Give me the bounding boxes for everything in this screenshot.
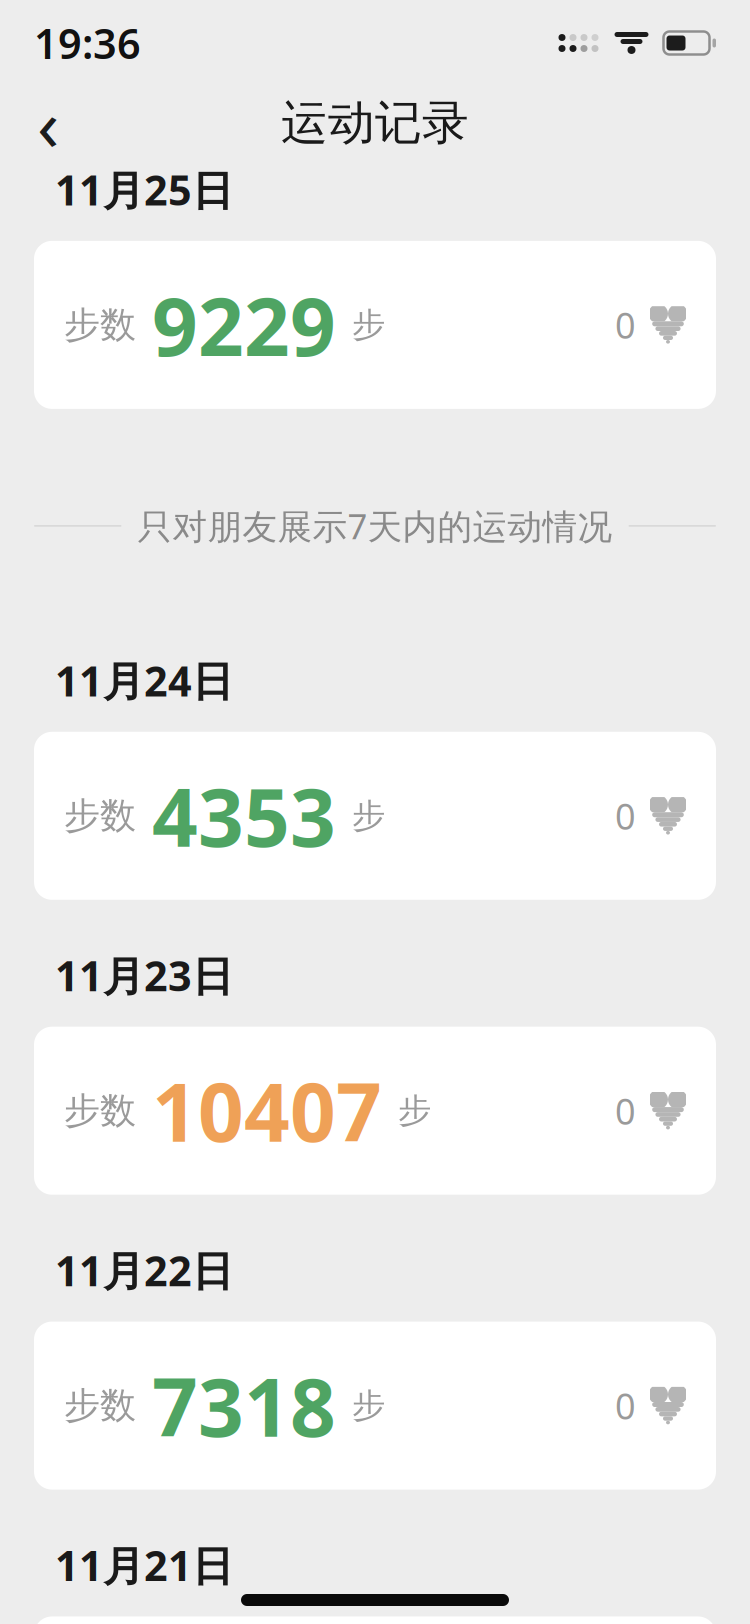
staticText: 19:36	[34, 16, 141, 70]
button[interactable]: 步数	[34, 1616, 716, 1624]
staticText: 步	[352, 795, 385, 836]
staticText: 步	[398, 1090, 431, 1131]
button[interactable]: Back	[20, 95, 76, 151]
staticText: 11月22日	[55, 1243, 233, 1298]
button[interactable]: 步数	[34, 1322, 716, 1490]
staticText: 0	[615, 1382, 636, 1429]
staticText: 步数	[64, 794, 136, 838]
staticText: 7318	[152, 1352, 336, 1459]
button[interactable]: 步数	[34, 1027, 716, 1195]
staticText: ‹	[37, 75, 59, 171]
staticText: 步数	[64, 303, 136, 347]
staticText: 0	[615, 792, 636, 840]
staticText: 步	[352, 1385, 385, 1426]
staticText: 11月21日	[55, 1538, 233, 1592]
staticText: 4353	[152, 763, 336, 869]
staticText: 步数	[64, 1089, 136, 1133]
staticText: 11月25日	[55, 162, 233, 217]
staticText: 11月24日	[55, 653, 233, 708]
staticText: 11月23日	[55, 948, 233, 1003]
staticText: 只对朋友展示7天内的运动情况	[137, 503, 612, 549]
staticText: 0	[615, 1087, 636, 1135]
staticText: 10407	[152, 1058, 382, 1164]
staticText: 运动记录	[281, 94, 469, 152]
staticText: 9229	[152, 272, 336, 378]
staticText: 0	[615, 301, 636, 349]
staticText: 步	[352, 304, 385, 345]
staticText: 步数	[64, 1383, 136, 1428]
button[interactable]: 步数	[34, 241, 716, 409]
button[interactable]: 步数	[34, 732, 716, 900]
